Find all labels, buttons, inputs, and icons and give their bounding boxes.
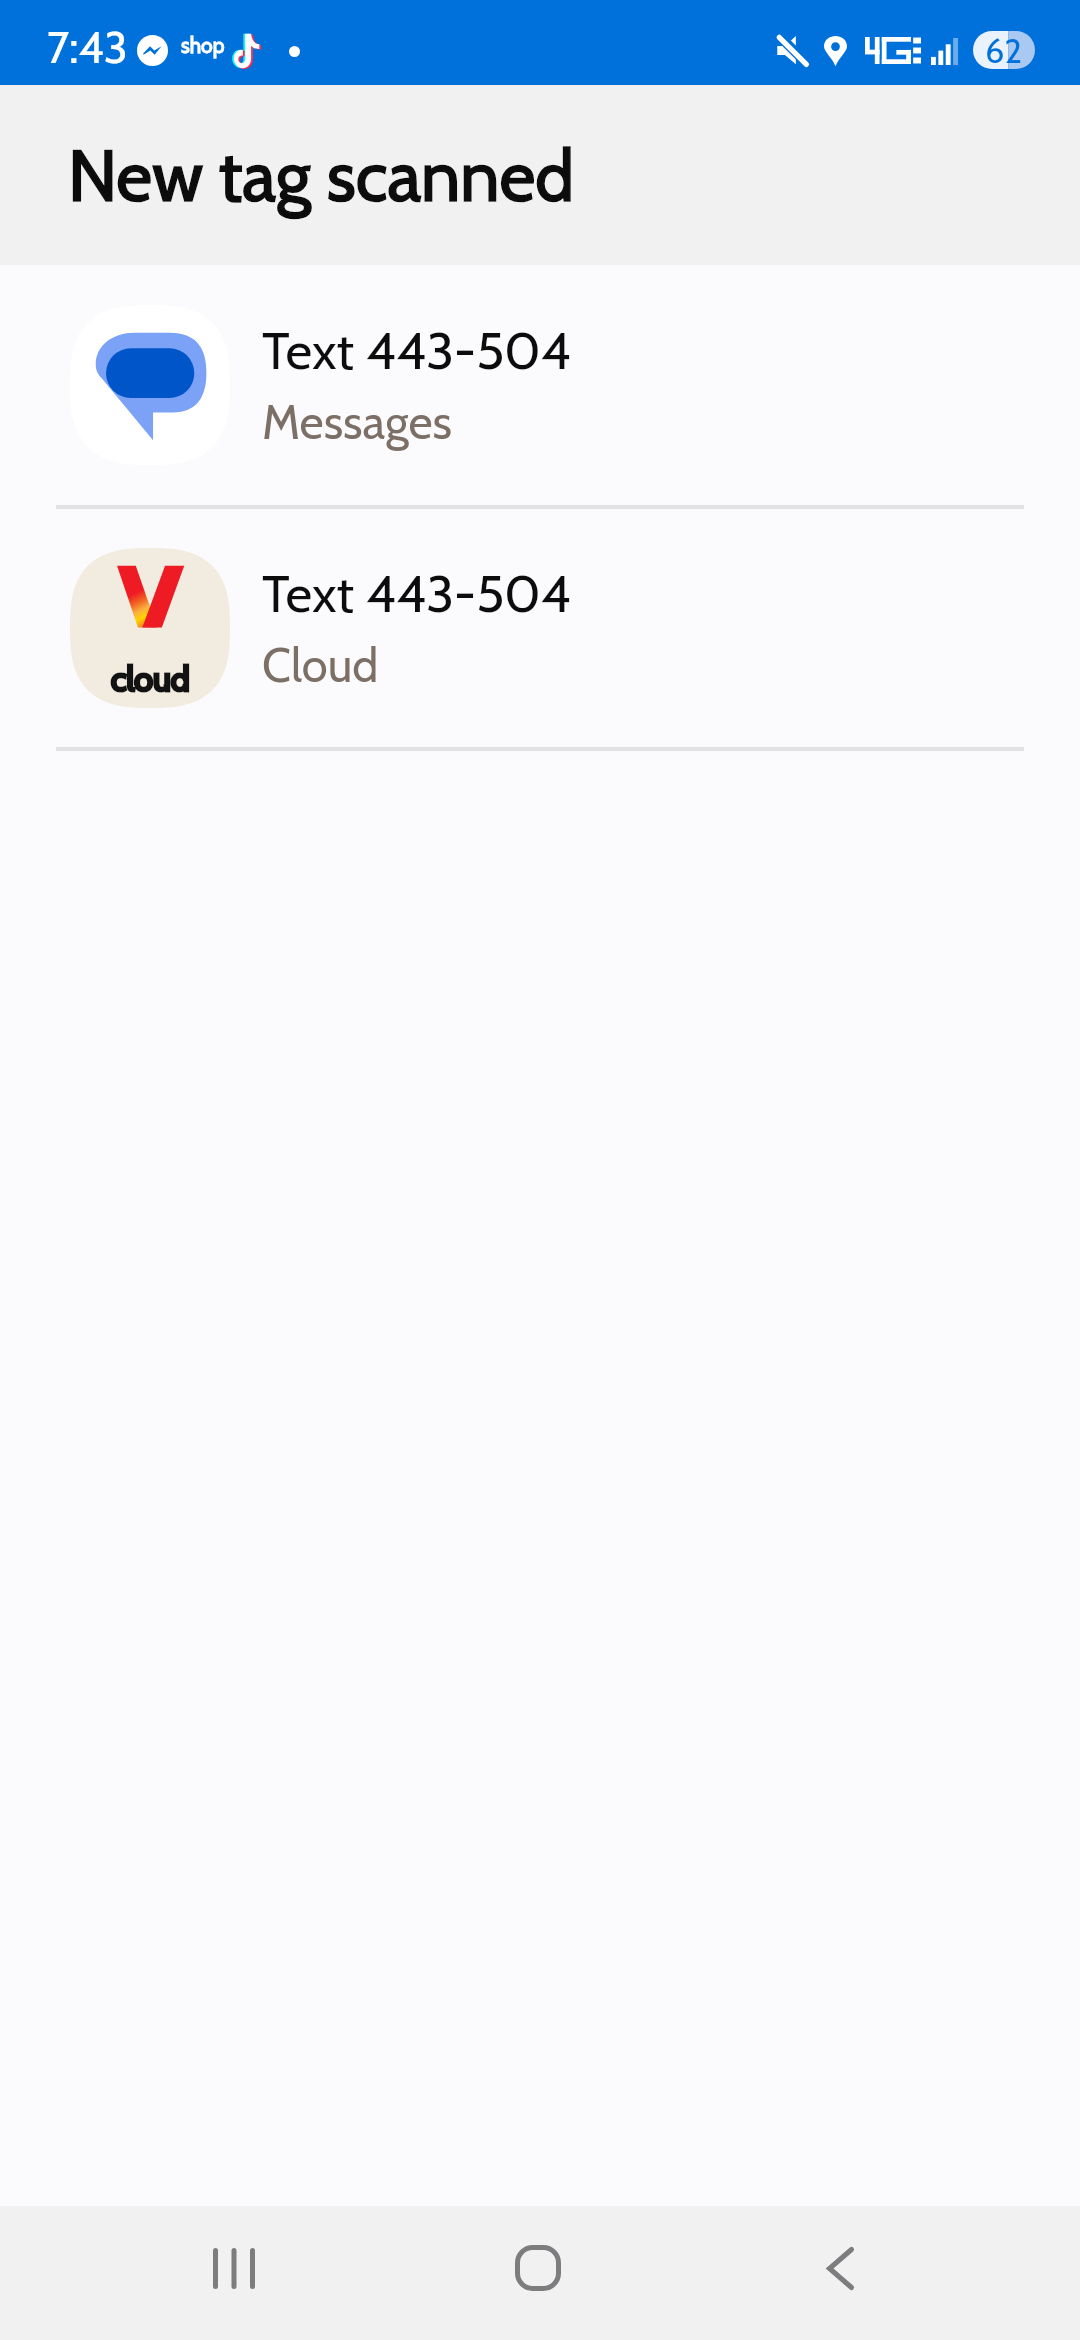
staticText: New tag scanned: [68, 132, 575, 219]
staticText: cloud: [111, 658, 190, 699]
button[interactable]: Back: [760, 2201, 920, 2335]
staticText: cloud: [111, 658, 190, 699]
staticText: 7:43: [47, 21, 128, 74]
button[interactable]: Recent apps: [154, 2201, 314, 2335]
staticText: Cloud: [262, 637, 379, 694]
staticText: Text 443-504: [262, 319, 571, 382]
staticText: shop: [181, 33, 225, 59]
button[interactable]: Text 443-504: [0, 265, 1080, 505]
button[interactable]: cloud: [0, 509, 1080, 747]
button[interactable]: Home: [458, 2201, 618, 2335]
staticText: 62: [985, 31, 1023, 68]
staticText: New tag scanned: [68, 132, 575, 219]
staticText: Text 443-504: [262, 562, 571, 625]
staticText: Messages: [262, 394, 453, 451]
